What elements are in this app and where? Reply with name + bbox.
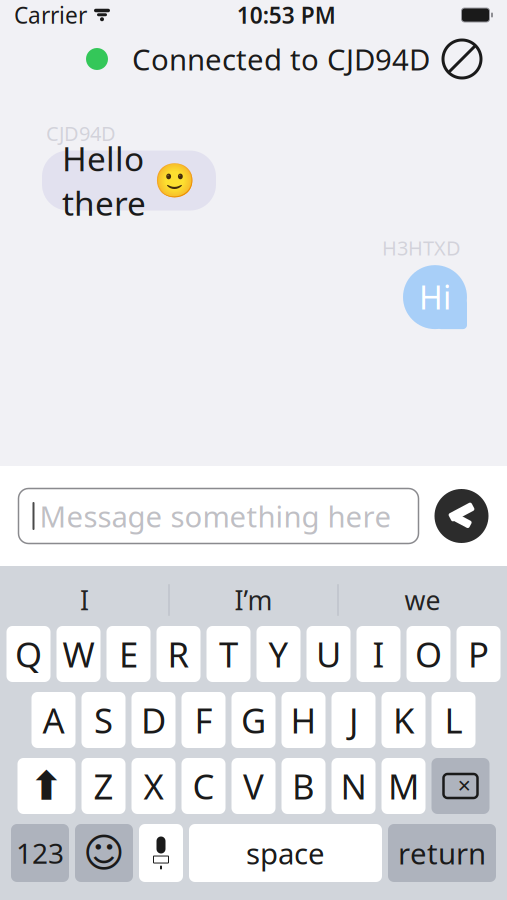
button[interactable]: N — [331, 758, 375, 814]
staticText: space — [246, 833, 325, 872]
staticText: G — [241, 697, 266, 743]
button[interactable]: U — [306, 626, 350, 682]
staticText: Y — [268, 631, 288, 677]
button[interactable]: B — [281, 758, 325, 814]
staticText: P — [468, 631, 489, 677]
button[interactable]: G — [231, 692, 275, 748]
staticText: O — [415, 631, 442, 677]
staticText: D — [141, 697, 166, 743]
button[interactable]: I’m — [169, 578, 337, 622]
button[interactable]: L — [431, 692, 475, 748]
button[interactable]: T — [206, 626, 250, 682]
button[interactable]: Message something here — [18, 488, 418, 543]
button[interactable]: K — [381, 692, 425, 748]
button[interactable]: X — [131, 758, 175, 814]
staticText: ✕ — [457, 776, 472, 796]
staticText: K — [393, 697, 414, 743]
button[interactable]: O — [406, 626, 450, 682]
staticText: I’m — [234, 582, 272, 618]
staticText: F — [194, 697, 212, 743]
staticText: X — [143, 763, 163, 809]
button[interactable]: space — [189, 824, 382, 882]
button[interactable]: F — [181, 692, 225, 748]
staticText: return — [398, 833, 486, 872]
button[interactable]: Y — [256, 626, 300, 682]
staticText: I — [80, 582, 89, 618]
staticText: J — [349, 697, 358, 743]
staticText: R — [167, 631, 189, 677]
staticText: 🙂 — [154, 161, 196, 200]
button[interactable]: D — [131, 692, 175, 748]
button[interactable]: M — [381, 758, 425, 814]
staticText: ☺ — [83, 830, 125, 876]
staticText: 123 — [16, 834, 64, 872]
button[interactable]: C — [181, 758, 225, 814]
staticText: W — [62, 631, 94, 677]
button[interactable]: R — [156, 626, 200, 682]
button[interactable]: Q — [6, 626, 50, 682]
button[interactable]: Send — [434, 489, 488, 543]
button[interactable]: J — [331, 692, 375, 748]
button[interactable]: P — [456, 626, 500, 682]
button[interactable]: Z — [81, 758, 125, 814]
staticText: 10:53 PM — [237, 0, 336, 30]
button[interactable]: I — [356, 626, 400, 682]
button[interactable]: I — [0, 578, 168, 622]
button[interactable]: Shift — [17, 758, 75, 814]
button[interactable]: Emoji — [75, 824, 133, 882]
staticText: L — [444, 697, 462, 743]
staticText: C — [192, 763, 214, 809]
button[interactable]: A — [31, 692, 75, 748]
button[interactable]: S — [81, 692, 125, 748]
staticText: B — [292, 763, 315, 809]
staticText: Hello there — [62, 136, 146, 225]
staticText: ⬆ — [29, 763, 63, 809]
staticText: V — [243, 763, 264, 809]
button[interactable]: 123 — [11, 824, 69, 882]
button[interactable]: V — [231, 758, 275, 814]
staticText: N — [340, 763, 366, 809]
staticText: H3HTXD — [382, 235, 461, 261]
staticText: Connected to CJD94D — [132, 39, 430, 78]
staticText: T — [219, 631, 238, 677]
staticText: Carrier — [14, 0, 87, 30]
staticText: M — [388, 763, 419, 809]
staticText: S — [94, 697, 113, 743]
button[interactable]: W — [56, 626, 100, 682]
button[interactable]: Disconnect — [435, 32, 489, 86]
button[interactable]: Delete — [431, 758, 489, 814]
staticText: I — [372, 631, 384, 677]
staticText: U — [316, 631, 341, 677]
staticText: A — [42, 697, 64, 743]
staticText: Z — [93, 763, 113, 809]
staticText: H — [290, 697, 316, 743]
staticText: Q — [15, 631, 42, 677]
staticText: CJD94D — [46, 120, 116, 147]
button[interactable]: we — [338, 578, 506, 622]
button[interactable]: E — [106, 626, 150, 682]
staticText: E — [119, 631, 138, 677]
button[interactable]: return — [388, 824, 496, 882]
button[interactable]: H — [281, 692, 325, 748]
staticText: we — [404, 582, 440, 618]
staticText: Message something here — [39, 496, 391, 535]
staticText: Hi — [419, 276, 451, 318]
button[interactable]: Dictate — [139, 824, 183, 882]
